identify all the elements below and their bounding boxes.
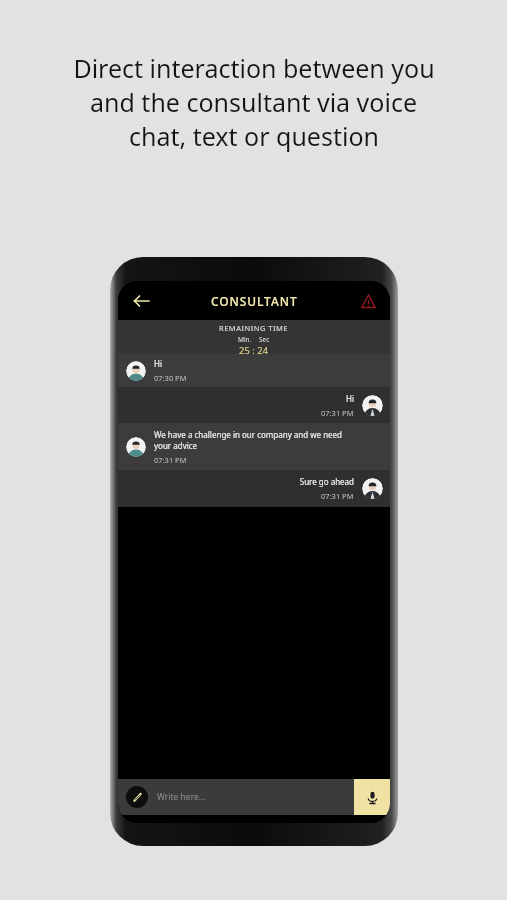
staticText: 07:30 PM xyxy=(154,373,187,383)
staticText: 25 : 24 xyxy=(239,344,269,354)
button[interactable]: Report xyxy=(355,288,381,314)
button[interactable]: Voice message xyxy=(354,779,390,815)
button[interactable]: Hi xyxy=(118,354,390,387)
staticText: REMAINING TIME xyxy=(219,323,289,333)
staticText: Hi xyxy=(346,393,354,404)
staticText: CONSULTANT xyxy=(211,293,298,309)
staticText: 07:31 PM xyxy=(154,455,187,465)
button[interactable]: Write here... xyxy=(157,779,354,815)
staticText: We have a challenge in our company and w… xyxy=(154,429,343,451)
staticText: Hi xyxy=(154,358,162,369)
button[interactable]: Hi xyxy=(118,387,390,423)
button[interactable]: We have a challenge in our company and w… xyxy=(118,423,390,470)
staticText: Direct interaction between you xyxy=(73,51,435,85)
staticText: Min. xyxy=(238,335,252,344)
staticText: Write here... xyxy=(157,791,206,803)
button[interactable]: Edit xyxy=(126,786,148,808)
staticText: Sec xyxy=(259,335,270,344)
staticText: Sure go ahead xyxy=(299,476,354,487)
staticText: 07:31 PM xyxy=(321,408,354,418)
button[interactable]: Back xyxy=(126,286,156,316)
staticText: chat, text or question xyxy=(129,119,379,153)
button[interactable]: Sure go ahead xyxy=(118,470,390,507)
staticText: 07:31 PM xyxy=(321,491,354,501)
staticText: and the consultant via voice xyxy=(90,85,417,119)
